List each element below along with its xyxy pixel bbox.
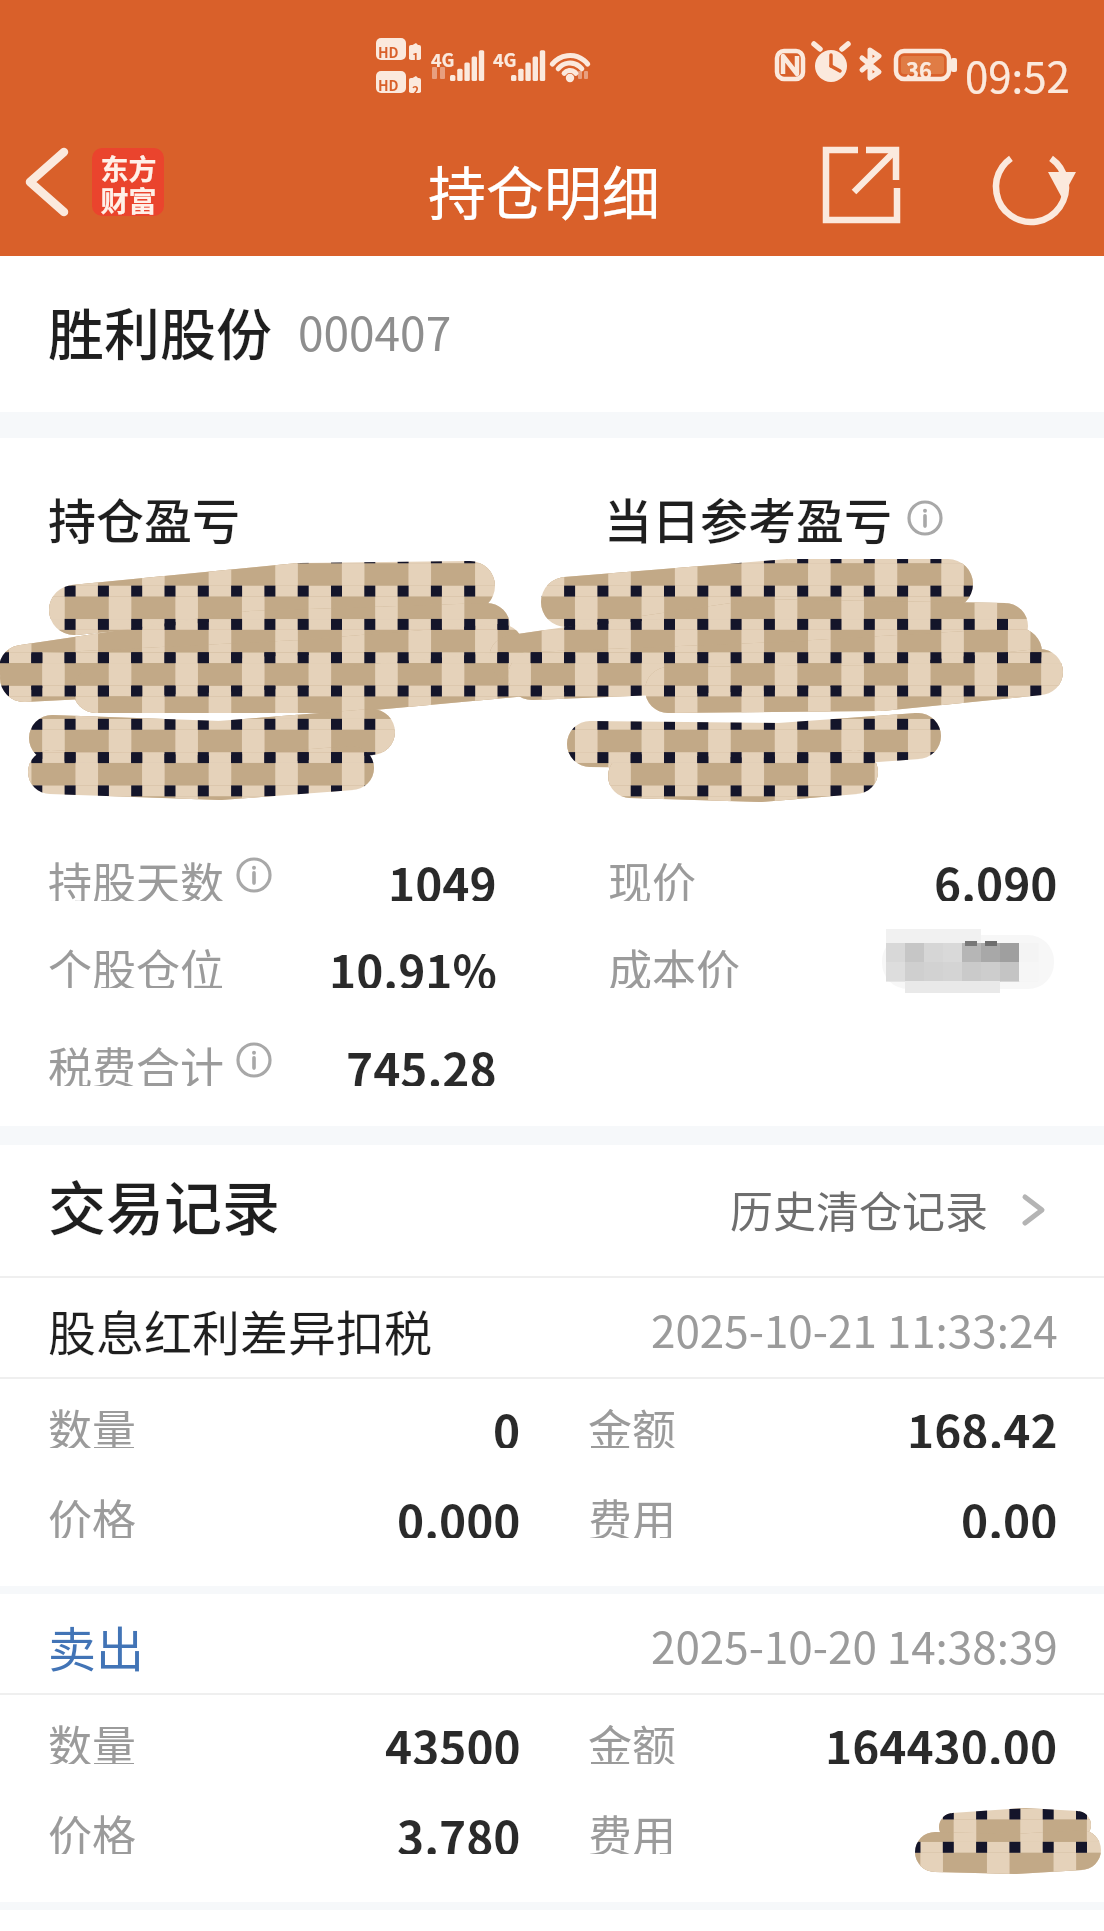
staticText: HD [378,75,399,95]
staticText: 当日参考盈亏 [604,483,893,553]
staticText: 持仓盈亏 [48,483,241,553]
staticText: 3.780 [397,1802,521,1854]
staticText: 4G [431,46,455,72]
staticText: 6.090 [934,849,1058,901]
staticText: 成本价 [608,936,740,988]
staticText: 价格 [48,1486,136,1538]
staticText: 0 [493,1396,521,1448]
staticText: 164430.00 [825,1712,1058,1764]
staticText: 36 [906,53,932,85]
button[interactable]: 历史清仓记录 [730,1178,1052,1240]
staticText: HD [378,42,399,62]
staticText: 1049 [388,849,497,901]
staticText: 2025-10-21 11:33:24 [651,1297,1058,1361]
staticText: 0.00 [961,1486,1058,1538]
staticText: 卖出 [48,1611,145,1681]
staticText: 现价 [608,849,696,901]
button[interactable]: East Money logo [92,148,164,216]
staticText: 0.000 [397,1486,521,1538]
staticText: 09:52 [965,44,1070,105]
staticText: 4G [493,46,517,72]
staticText: 东方 财富 [100,148,157,216]
button[interactable]: Share [806,126,918,238]
staticText: 税费合计 [48,1034,224,1086]
staticText: 胜利股份 [48,290,272,371]
staticText: 数量 [48,1712,136,1764]
staticText: 金额 [588,1396,676,1448]
staticText: 数量 [48,1396,136,1448]
staticText: 持股天数 [48,849,224,901]
staticText: 价格 [48,1802,136,1854]
staticText: 历史清仓记录 [730,1178,988,1240]
staticText: 43500 [385,1712,521,1764]
staticText: 金额 [588,1712,676,1764]
button[interactable]: Refresh [984,126,1084,226]
staticText: 1 [412,48,420,65]
staticText: 745.28 [346,1034,497,1086]
staticText: 股息红利差异扣税 [48,1295,433,1365]
staticText: 2025-10-20 14:38:39 [651,1613,1058,1677]
staticText: 000407 [298,298,452,365]
button[interactable]: 胜利股份 [0,256,1104,412]
staticText: 持仓明细 [428,148,661,232]
staticText: 费用 [588,1486,676,1538]
staticText: 10.91% [329,936,497,988]
button[interactable]: Back [6,128,88,238]
staticText: 费用 [588,1802,676,1854]
staticText: 168.42 [907,1396,1058,1448]
staticText: 个股仓位 [48,936,224,988]
staticText: 交易记录 [48,1163,281,1247]
staticText: 2 [412,81,420,98]
